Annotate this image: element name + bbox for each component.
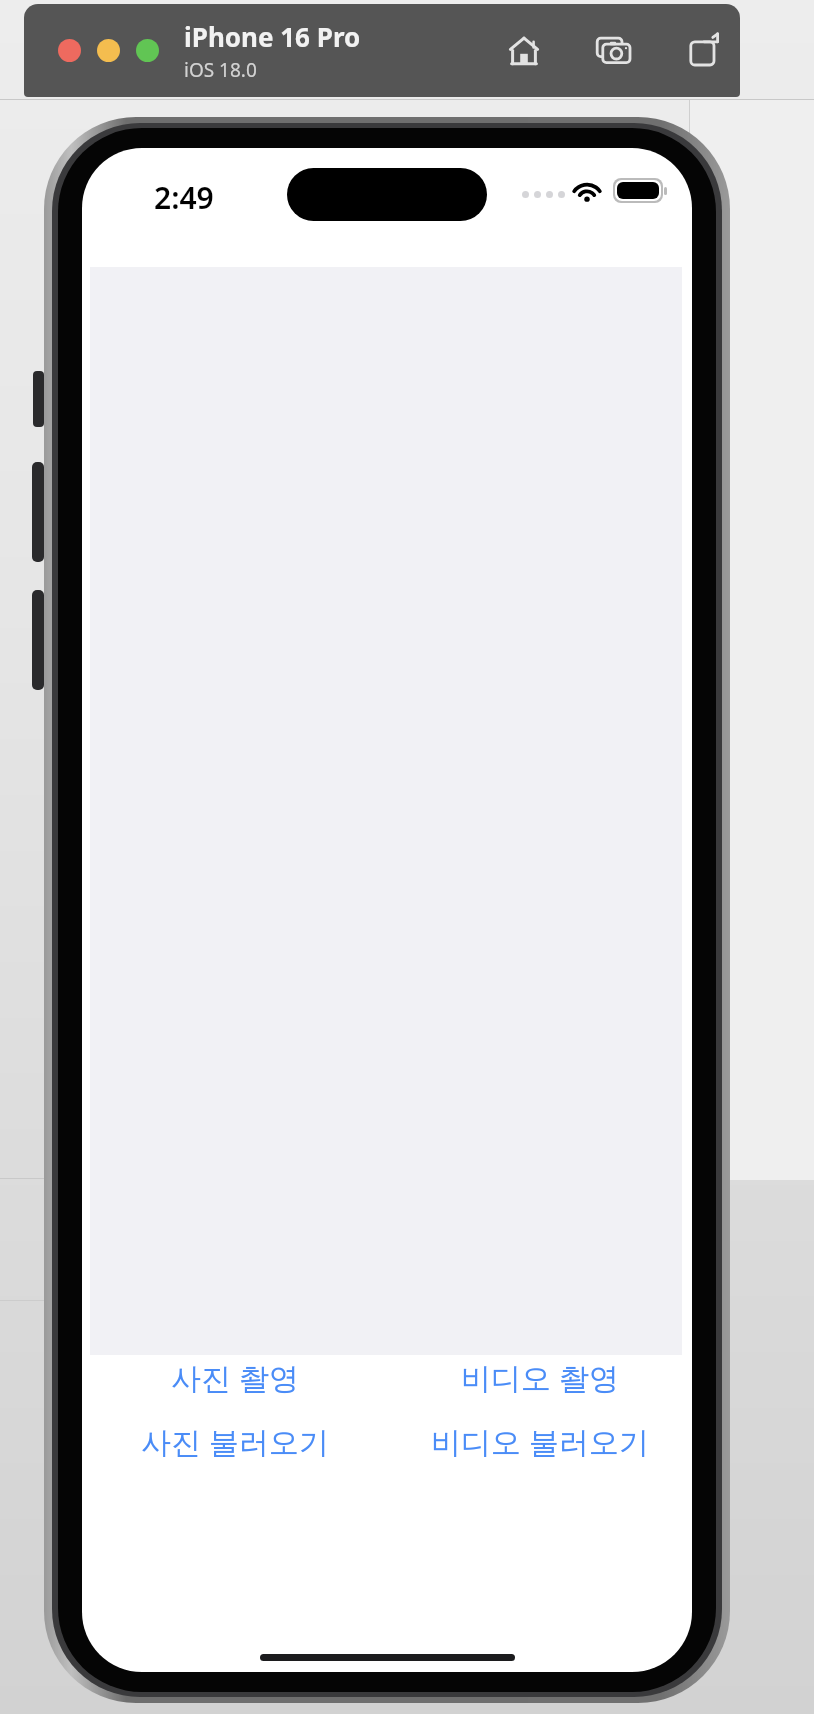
- button[interactable]: Screenshot: [588, 25, 640, 77]
- staticText: 비디오 불러오기: [431, 1421, 649, 1462]
- staticText: 사진 불러오기: [141, 1421, 329, 1462]
- staticText: 2:49: [154, 177, 214, 218]
- staticText: 비디오 촬영: [461, 1357, 619, 1398]
- button[interactable]: Window control: [136, 39, 159, 62]
- button[interactable]: 사진 불러오기: [82, 1419, 387, 1463]
- button[interactable]: Home: [498, 25, 550, 77]
- button[interactable]: 비디오 불러오기: [387, 1419, 692, 1463]
- button[interactable]: Window control: [97, 39, 120, 62]
- staticText: iOS 18.0: [184, 57, 257, 83]
- button[interactable]: 비디오 촬영: [387, 1355, 692, 1399]
- staticText: iPhone 16 Pro: [184, 19, 361, 54]
- staticText: 사진 촬영: [171, 1357, 299, 1398]
- button[interactable]: Silent switch: [33, 371, 44, 427]
- button[interactable]: Window control: [58, 39, 81, 62]
- button[interactable]: Rotate: [678, 25, 730, 77]
- button[interactable]: 사진 촬영: [82, 1355, 387, 1399]
- button[interactable]: Volume down: [32, 590, 44, 690]
- button[interactable]: Volume up: [32, 462, 44, 562]
